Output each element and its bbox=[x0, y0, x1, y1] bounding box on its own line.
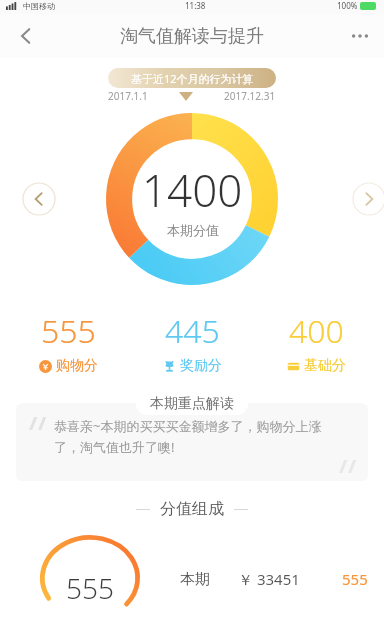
button[interactable]: Next period bbox=[352, 182, 384, 216]
staticText: 本期分值 bbox=[167, 222, 219, 238]
button[interactable]: 400 bbox=[262, 307, 370, 377]
staticText: 本期重点解读 bbox=[150, 395, 234, 413]
staticText: 555 bbox=[41, 309, 96, 353]
staticText: 分值组成 bbox=[160, 499, 224, 519]
button[interactable]: 恭喜亲~本期的买买买金额增多了，购物分上涨了，淘气值也升了噢! bbox=[16, 403, 368, 481]
staticText: 2017.12.31 bbox=[224, 89, 276, 103]
staticText: 购物分 bbox=[56, 357, 98, 375]
staticText: 基于近12个月的行为计算 bbox=[131, 71, 254, 86]
staticText: 奖励分 bbox=[180, 357, 222, 375]
button[interactable]: Previous period bbox=[22, 182, 56, 216]
staticText: 11:38 bbox=[185, 0, 206, 11]
staticText: 基础分 bbox=[304, 357, 346, 375]
staticText: 2017.1.1 bbox=[108, 89, 148, 103]
button[interactable]: Back bbox=[8, 18, 44, 54]
button[interactable]: 555 bbox=[14, 307, 122, 377]
staticText: 中国移动 bbox=[23, 1, 55, 11]
staticText: ￥ 33451 bbox=[238, 569, 300, 589]
staticText: 本期 bbox=[180, 570, 210, 589]
staticText: 400 bbox=[289, 309, 344, 353]
button[interactable]: 445 bbox=[138, 307, 246, 377]
button[interactable]: More options bbox=[340, 16, 380, 56]
staticText: 淘气值解读与提升 bbox=[120, 25, 264, 48]
staticText: 100% bbox=[337, 0, 358, 11]
staticText: 555 bbox=[66, 569, 114, 607]
staticText: 555 bbox=[342, 569, 368, 589]
button[interactable]: 555 bbox=[0, 535, 384, 621]
staticText: 445 bbox=[165, 309, 220, 353]
staticText: 恭喜亲~本期的买买买金额增多了，购物分上涨了，淘气值也升了噢! bbox=[54, 417, 346, 456]
staticText: 1400 bbox=[142, 160, 243, 220]
